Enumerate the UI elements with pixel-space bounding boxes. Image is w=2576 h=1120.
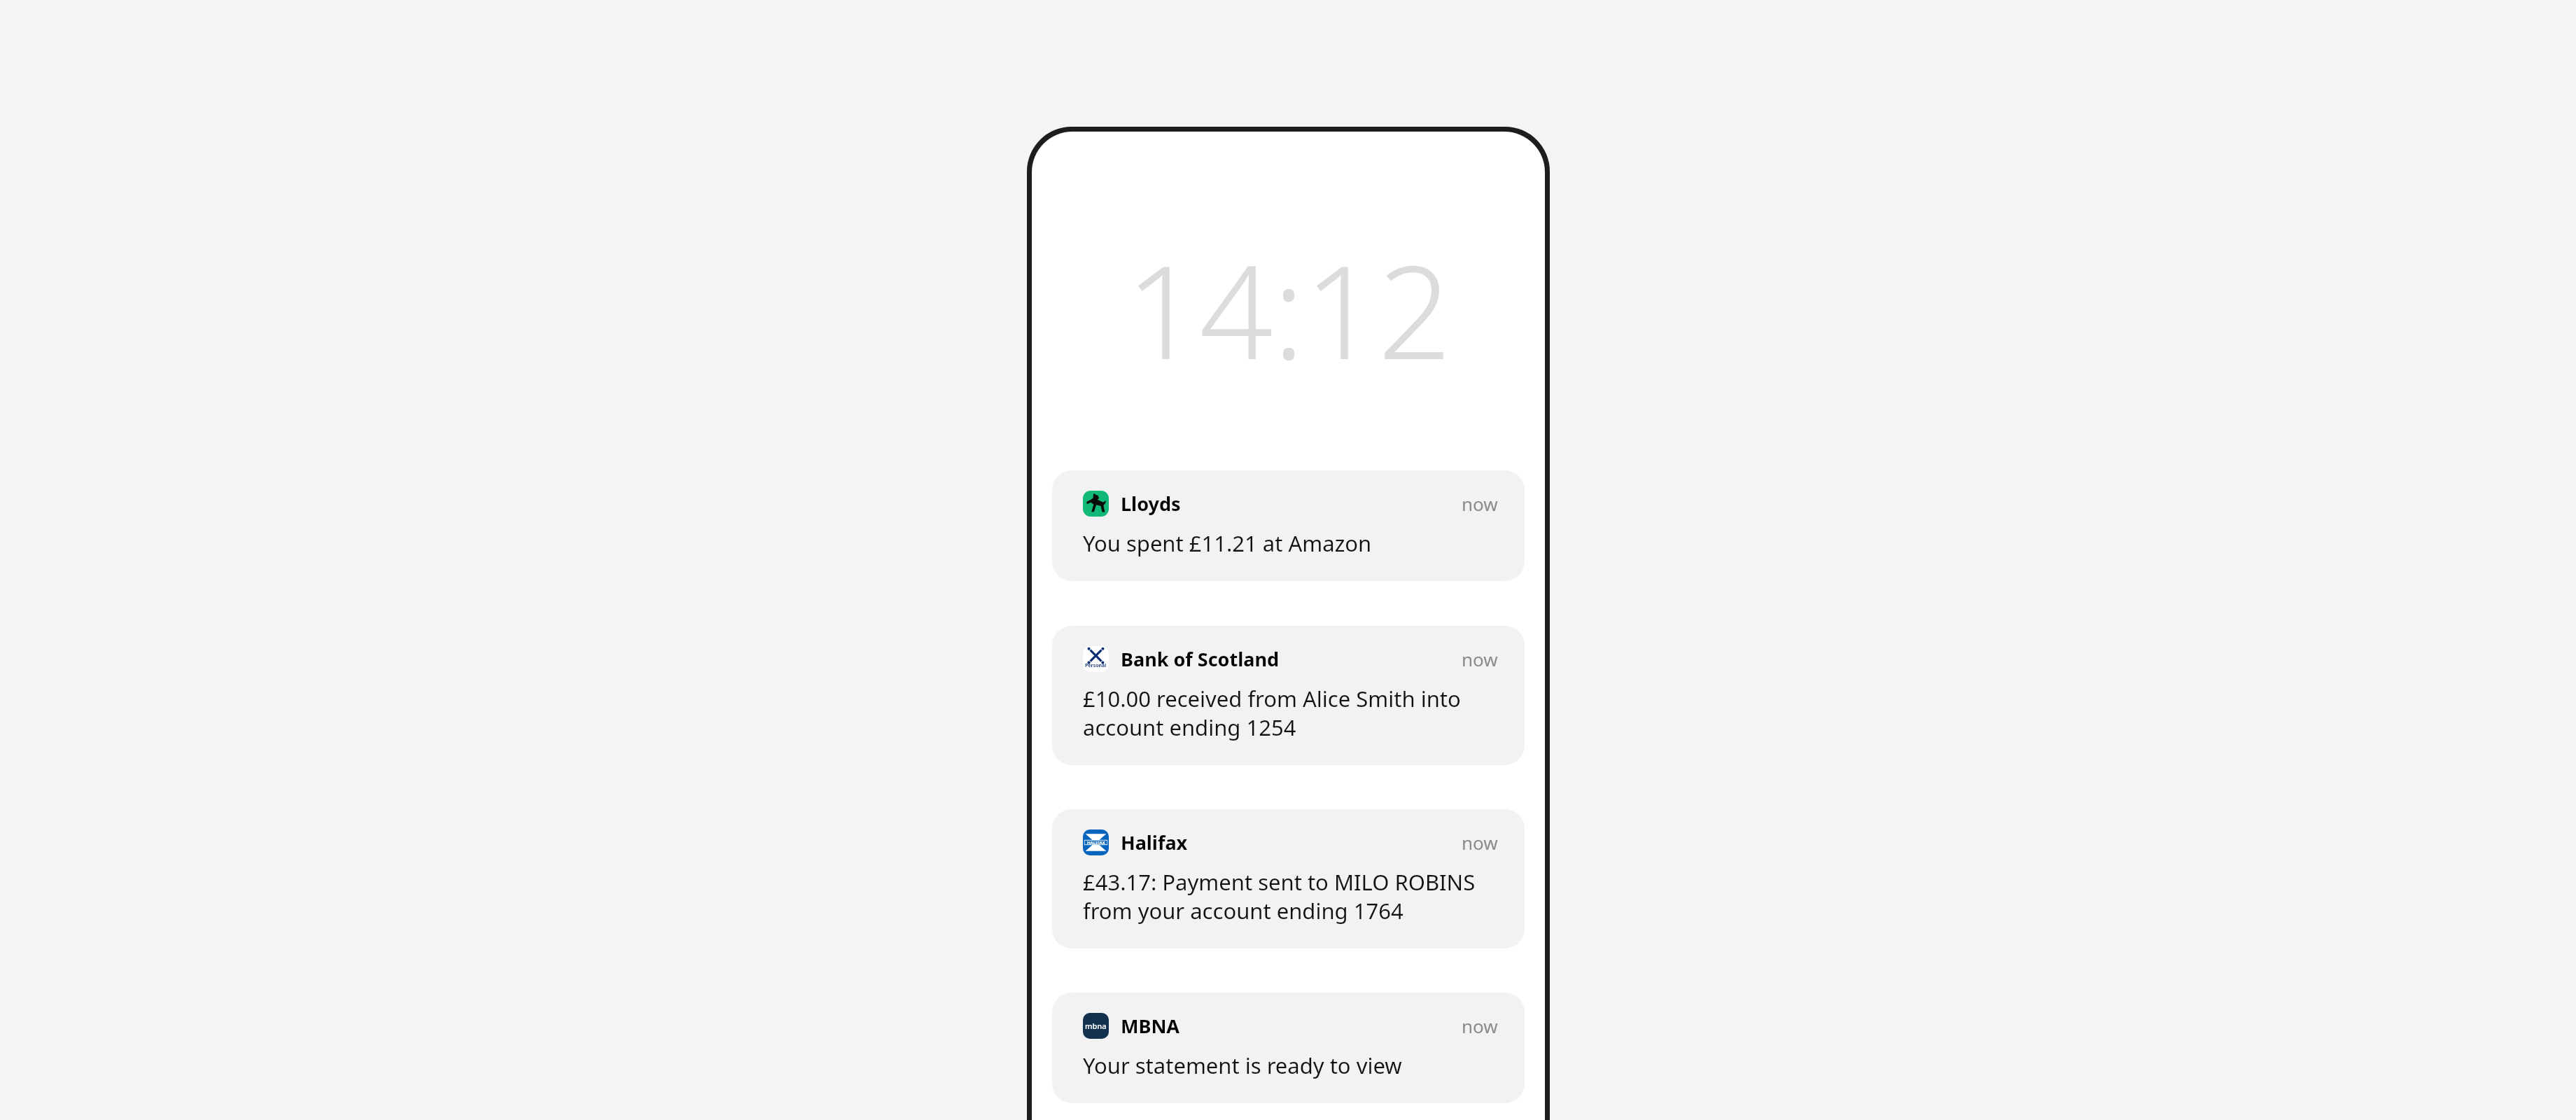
staticText: mbna: [1085, 1021, 1107, 1031]
staticText: Lloyds: [1121, 491, 1181, 517]
staticText: You spent £11.21 at Amazon: [1083, 528, 1372, 558]
staticText: now: [1462, 491, 1498, 516]
staticText: now: [1462, 830, 1498, 855]
other: Bank of Scotland app icon: [1083, 646, 1109, 672]
staticText: £43.17: Payment sent to MILO ROBINS from…: [1083, 867, 1498, 925]
staticText: Bank of Scotland: [1121, 646, 1280, 672]
staticText: Halifax: [1121, 829, 1188, 855]
staticText: £10.00 received from Alice Smith into ac…: [1083, 684, 1498, 742]
staticText: Personal: [1085, 662, 1107, 669]
staticText: now: [1462, 647, 1498, 671]
staticText: HALIFAX: [1087, 840, 1105, 846]
staticText: 14:12: [1126, 221, 1452, 397]
button[interactable]: MBNA app icon: [1052, 993, 1525, 1103]
staticText: now: [1462, 1014, 1498, 1038]
other: MBNA app icon: [1083, 1013, 1109, 1039]
other: Lloyds app icon: [1083, 491, 1109, 517]
staticText: MBNA: [1121, 1013, 1180, 1039]
button[interactable]: Halifax app icon: [1052, 809, 1525, 948]
button[interactable]: Lloyds app icon: [1052, 470, 1525, 581]
button[interactable]: Bank of Scotland app icon: [1052, 626, 1525, 765]
other: Halifax app icon: [1083, 829, 1109, 855]
staticText: Your statement is ready to view: [1083, 1051, 1402, 1080]
